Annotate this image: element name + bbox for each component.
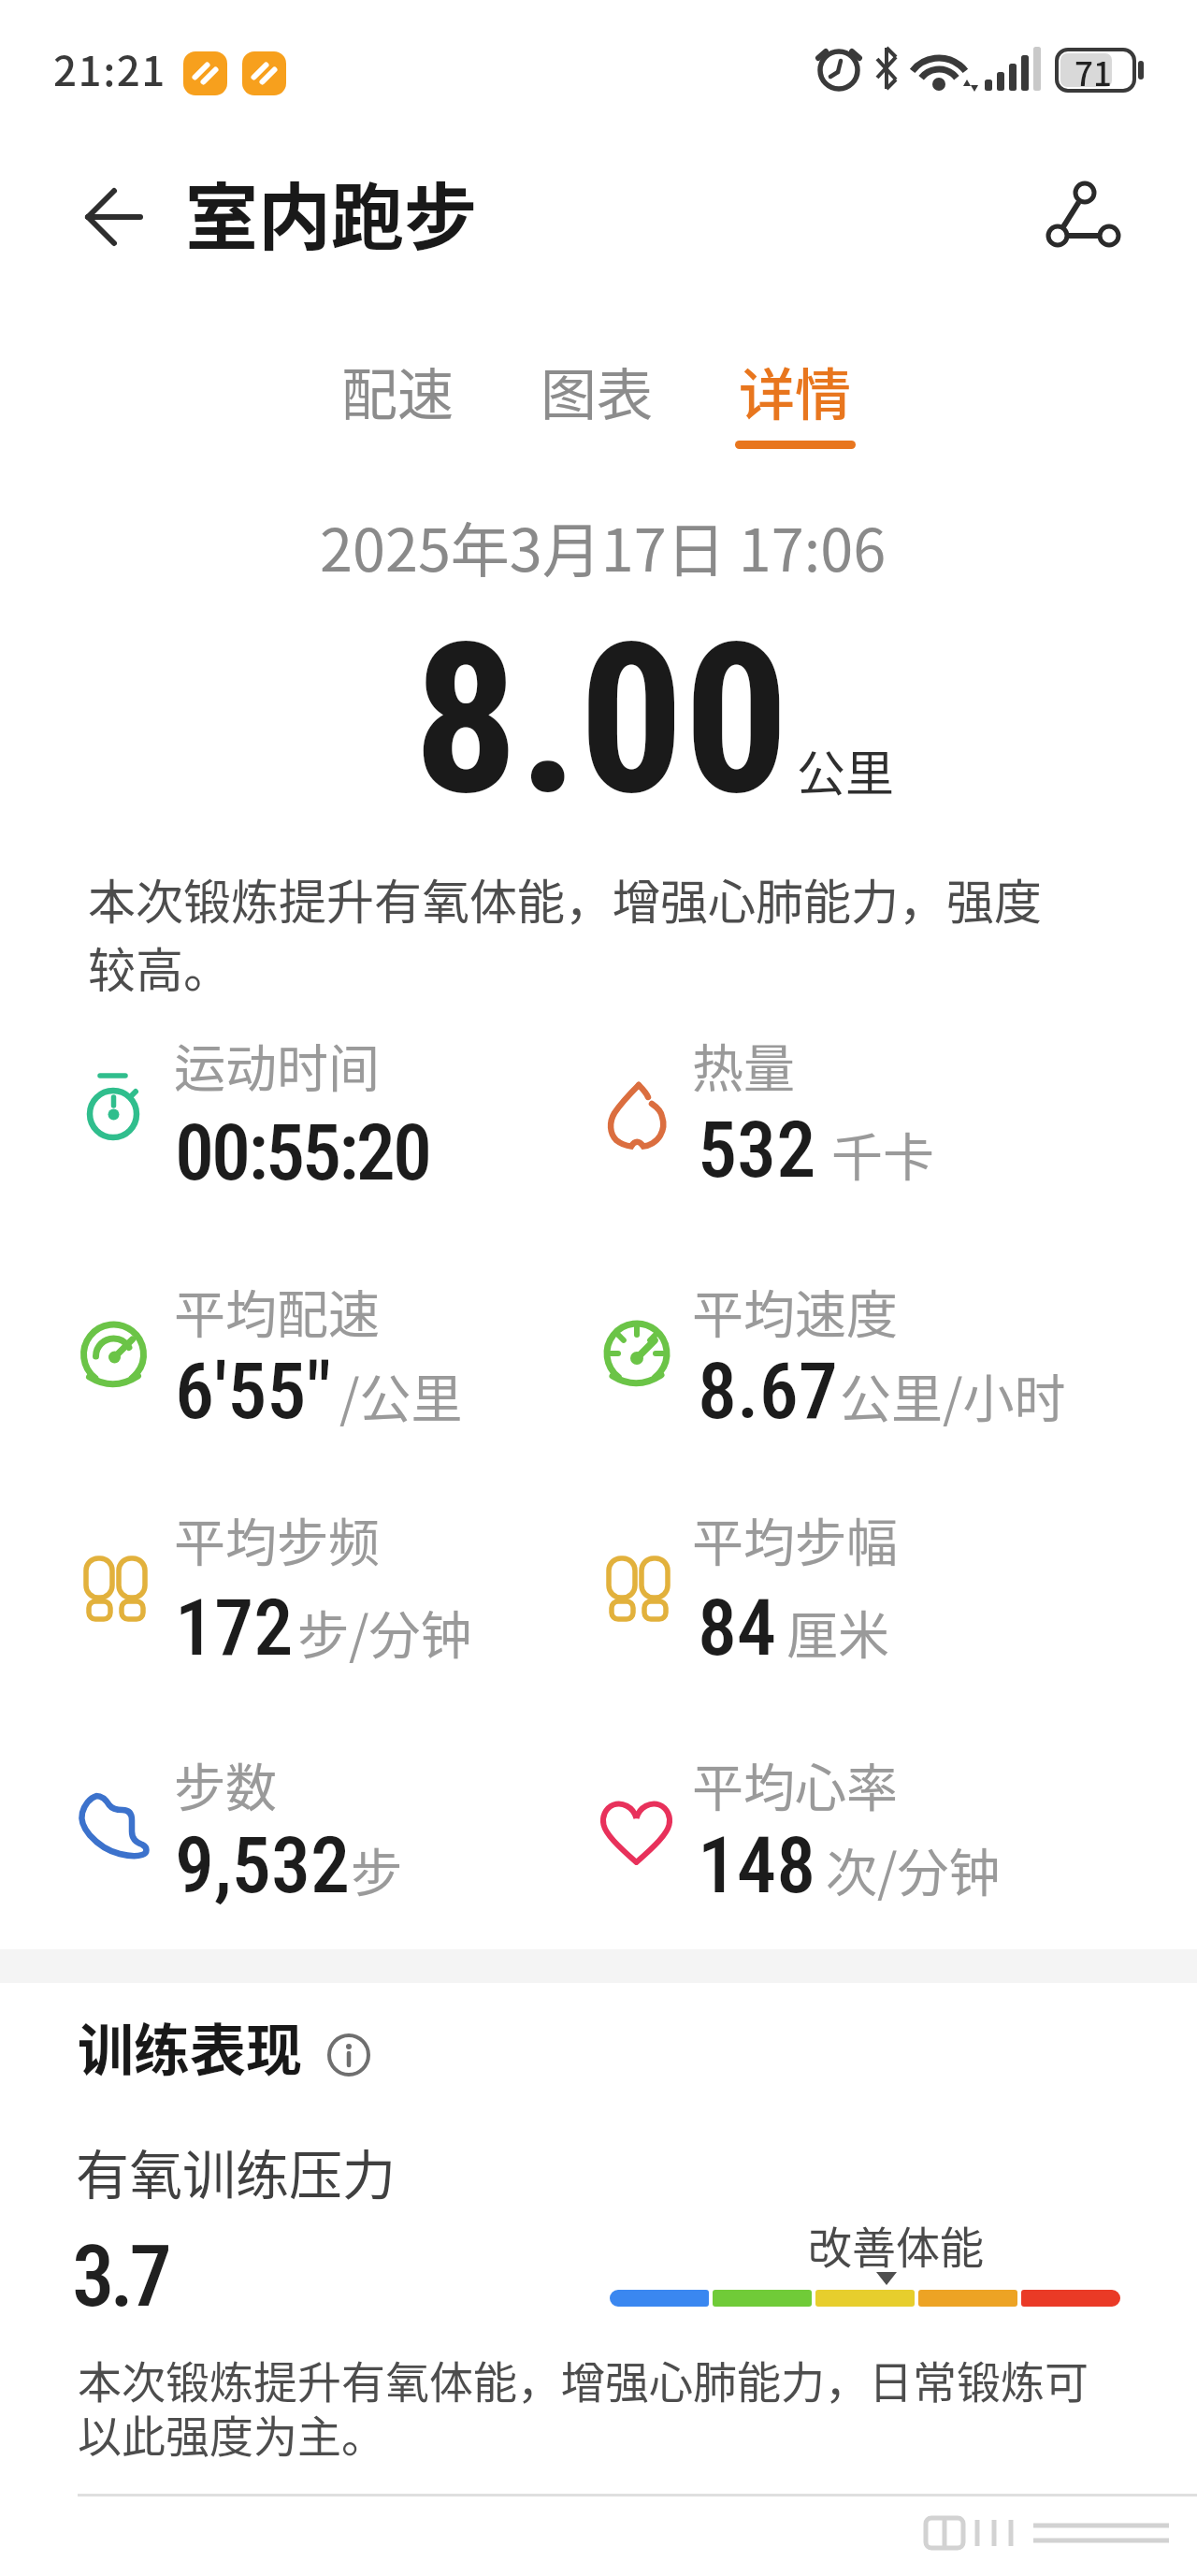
button[interactable] — [1024, 159, 1146, 271]
staticText: 8.00 — [413, 599, 789, 842]
staticText: 运动时间 — [174, 1027, 381, 1102]
staticText: 步/分钟 — [297, 1594, 472, 1669]
button[interactable] — [65, 168, 168, 271]
button[interactable]: 详情 — [692, 346, 898, 435]
staticText: 6'55" — [175, 1345, 332, 1437]
staticText: 详情 — [739, 350, 851, 431]
staticText: 有氧训练压力 — [76, 2133, 396, 2210]
staticText: 训练表现 — [78, 2005, 302, 2087]
staticText: 84 — [698, 1582, 777, 1673]
staticText: 平均步频 — [174, 1501, 381, 1576]
staticText: 厘米 — [786, 1594, 890, 1669]
staticText: 公里/小时 — [840, 1357, 1066, 1432]
staticText: 平均速度 — [692, 1273, 899, 1348]
staticText: 图表 — [541, 350, 653, 431]
staticText: 532 — [698, 1104, 816, 1195]
staticText: 21:21 — [53, 38, 166, 98]
staticText: 2025年3月17日 17:06 — [320, 503, 887, 588]
staticText: 平均心率 — [692, 1746, 899, 1821]
staticText: 步数 — [174, 1746, 278, 1821]
staticText: 172 — [175, 1582, 294, 1673]
staticText: 千卡 — [831, 1116, 935, 1191]
staticText: 71 — [1074, 48, 1112, 95]
staticText: 公里 — [797, 735, 895, 805]
staticText: 00:55:20 — [175, 1107, 429, 1198]
staticText: /公里 — [339, 1357, 463, 1432]
button[interactable] — [323, 2028, 379, 2084]
staticText: 平均步幅 — [692, 1501, 899, 1576]
staticText: 平均配速 — [174, 1273, 381, 1348]
staticText: 配速 — [341, 350, 454, 431]
staticText: 8.67 — [698, 1345, 838, 1437]
button[interactable]: 图表 — [494, 346, 699, 435]
staticText: 改善体能 — [808, 2212, 984, 2276]
staticText: 室内跑步 — [185, 160, 478, 266]
button[interactable]: 配速 — [295, 346, 500, 435]
staticText: 次/分钟 — [826, 1831, 1001, 1906]
staticText: 本次锻炼提升有氧体能，增强心肺能力，强度较高。 — [88, 864, 1060, 1002]
staticText: 本次锻炼提升有氧体能，增强心肺能力，日常锻炼可以此强度为主。 — [78, 2347, 1125, 2466]
staticText: 9,532 — [175, 1819, 351, 1911]
staticText: 148 — [698, 1819, 816, 1911]
staticText: 热量 — [692, 1027, 796, 1102]
staticText: 3.7 — [72, 2227, 167, 2327]
staticText: 步 — [351, 1831, 403, 1906]
